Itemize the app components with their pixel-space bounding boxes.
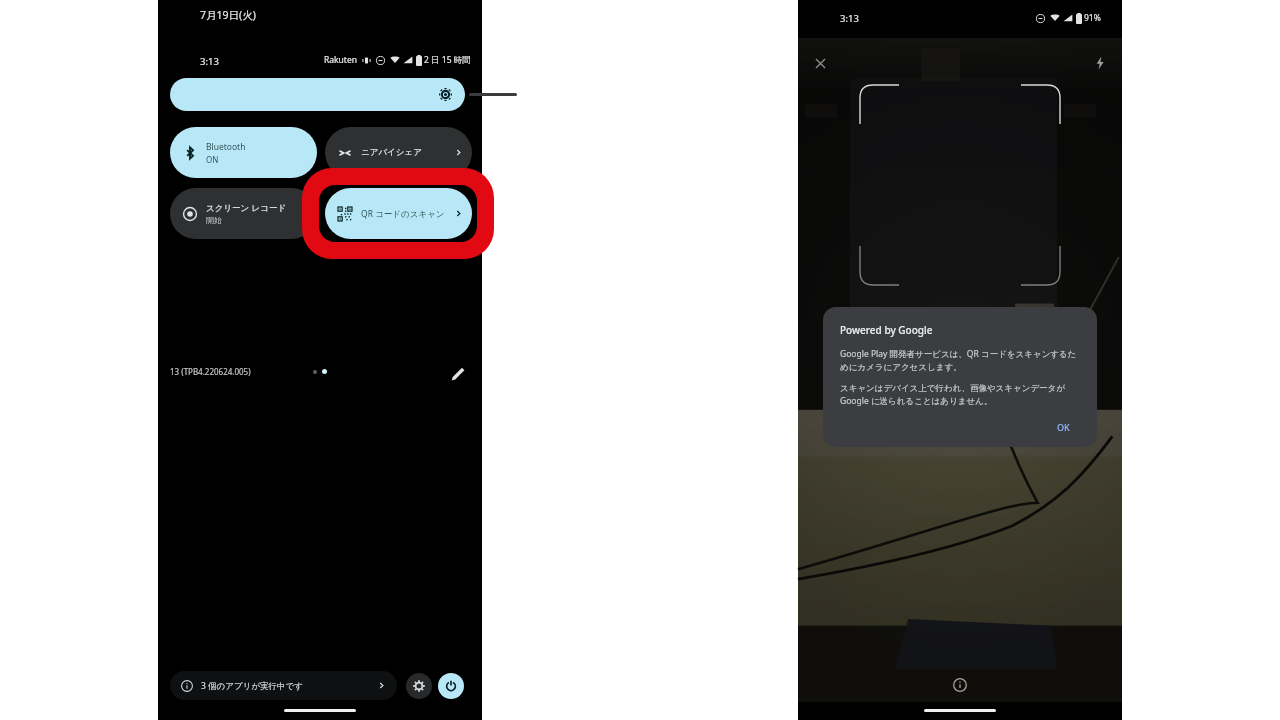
staticText: OK bbox=[1057, 421, 1070, 433]
button[interactable]: ニアバイシェア bbox=[325, 127, 472, 178]
button[interactable]: 3 個のアプリが実行中です bbox=[170, 671, 397, 700]
button[interactable]: Flash bbox=[1087, 50, 1113, 76]
button[interactable]: OK bbox=[1047, 415, 1080, 439]
staticText: スキャンはデバイス上で行われ、画像やスキャンデータが Google に送られるこ… bbox=[840, 382, 1080, 407]
staticText: Rakuten bbox=[324, 54, 357, 66]
staticText: 2 日 15 時間 bbox=[424, 54, 471, 66]
button[interactable]: Bluetooth bbox=[170, 127, 317, 178]
staticText: ON bbox=[206, 154, 219, 165]
staticText: 3:13 bbox=[840, 12, 859, 25]
staticText: 13 (TPB4.220624.005) bbox=[170, 366, 251, 377]
button[interactable]: Edit tiles bbox=[444, 360, 472, 388]
staticText: 開始 bbox=[206, 215, 222, 225]
staticText: Google Play 開発者サービスは、QR コードをスキャンするためにカメラ… bbox=[840, 348, 1080, 372]
staticText: 3 個のアプリが実行中です bbox=[201, 680, 303, 692]
button[interactable]: QR コードのスキャン bbox=[325, 188, 472, 239]
staticText: スクリーン レコード bbox=[206, 202, 287, 214]
button[interactable]: Power bbox=[438, 673, 464, 699]
button[interactable]: スクリーン レコード bbox=[170, 188, 317, 239]
staticText: 3:13 bbox=[200, 55, 219, 68]
staticText: 91% bbox=[1084, 12, 1101, 24]
button[interactable]: Close bbox=[807, 50, 833, 76]
staticText: Bluetooth bbox=[206, 141, 246, 153]
staticText: QR コードのスキャン bbox=[361, 208, 445, 220]
staticText: ニアバイシェア bbox=[361, 147, 422, 158]
staticText: 7月19日(火) bbox=[200, 8, 256, 22]
button[interactable]: Settings bbox=[406, 673, 432, 699]
button[interactable]: Information bbox=[946, 671, 974, 699]
staticText: Powered by Google bbox=[840, 323, 933, 337]
button[interactable]: Brightness bbox=[170, 78, 465, 111]
